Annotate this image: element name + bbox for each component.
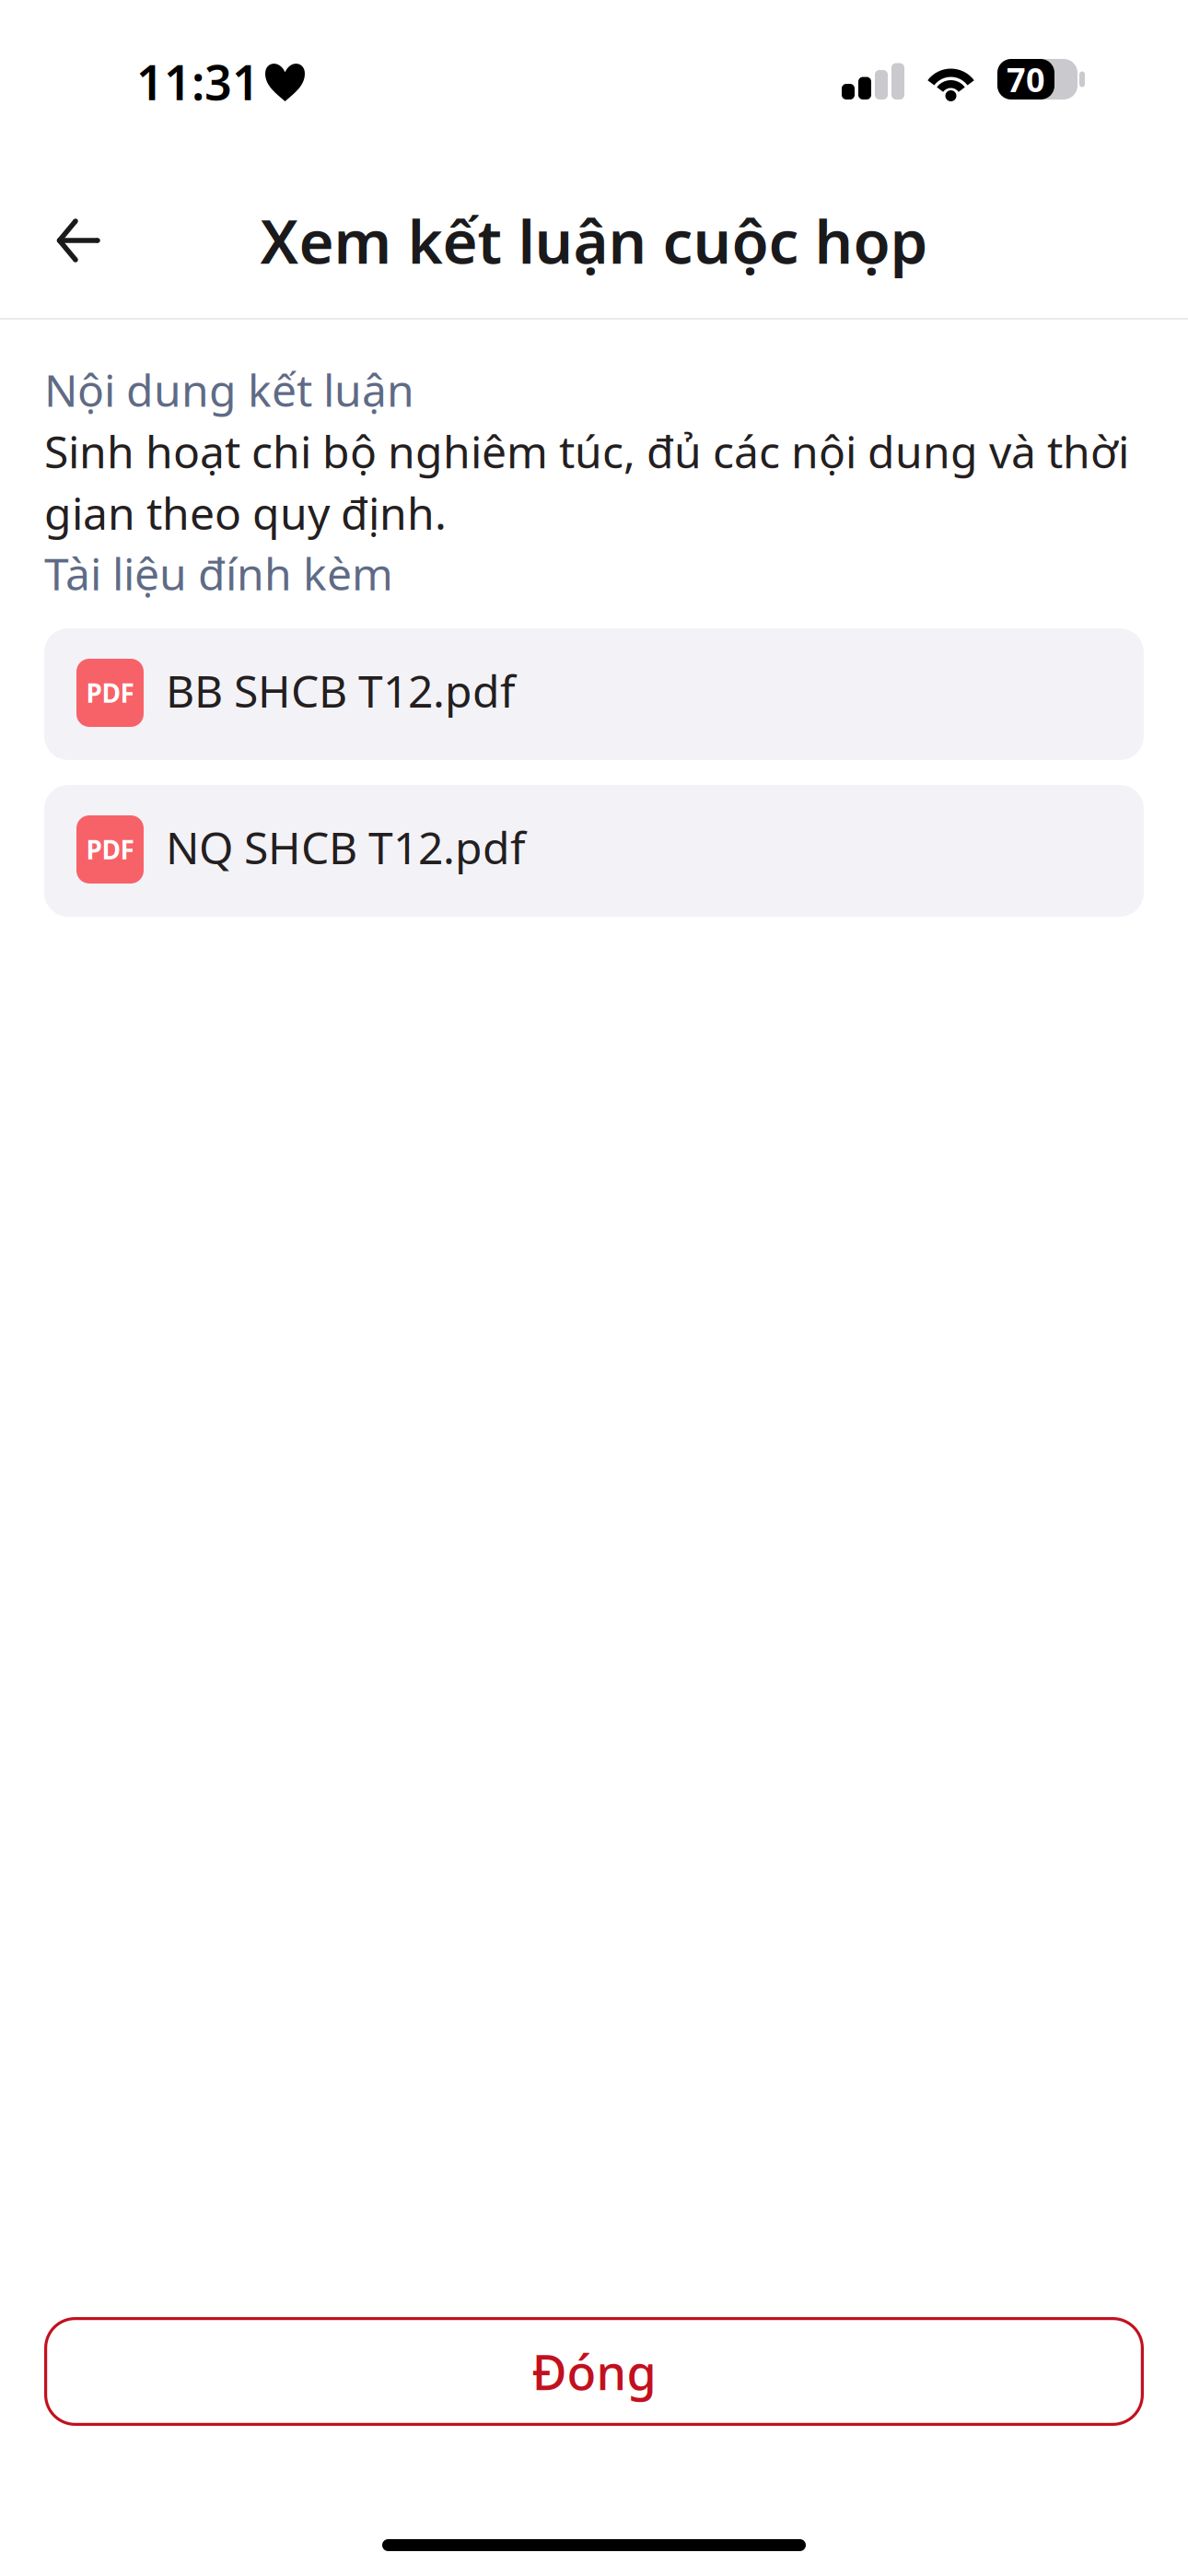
staticText: BB SHCB T12.pdf bbox=[166, 661, 516, 720]
staticText: PDF bbox=[86, 676, 134, 710]
staticText: PDF bbox=[86, 832, 134, 867]
staticText: 11:31 bbox=[136, 50, 260, 113]
staticText: Đóng bbox=[532, 2340, 656, 2403]
button[interactable]: Đóng bbox=[44, 2317, 1144, 2426]
staticText: Xem kết luận cuộc họp bbox=[260, 200, 928, 280]
staticText: 70 bbox=[1007, 57, 1045, 101]
button[interactable]: PDF bbox=[44, 785, 1144, 917]
staticText: NQ SHCB T12.pdf bbox=[166, 818, 526, 876]
staticText: Sinh hoạt chi bộ nghiêm túc, đủ các nội … bbox=[44, 422, 1129, 542]
button[interactable]: PDF bbox=[44, 628, 1144, 760]
staticText: Tài liệu đính kèm bbox=[44, 544, 393, 602]
button[interactable]: Back bbox=[0, 187, 142, 294]
staticText: Nội dung kết luận bbox=[44, 360, 414, 419]
